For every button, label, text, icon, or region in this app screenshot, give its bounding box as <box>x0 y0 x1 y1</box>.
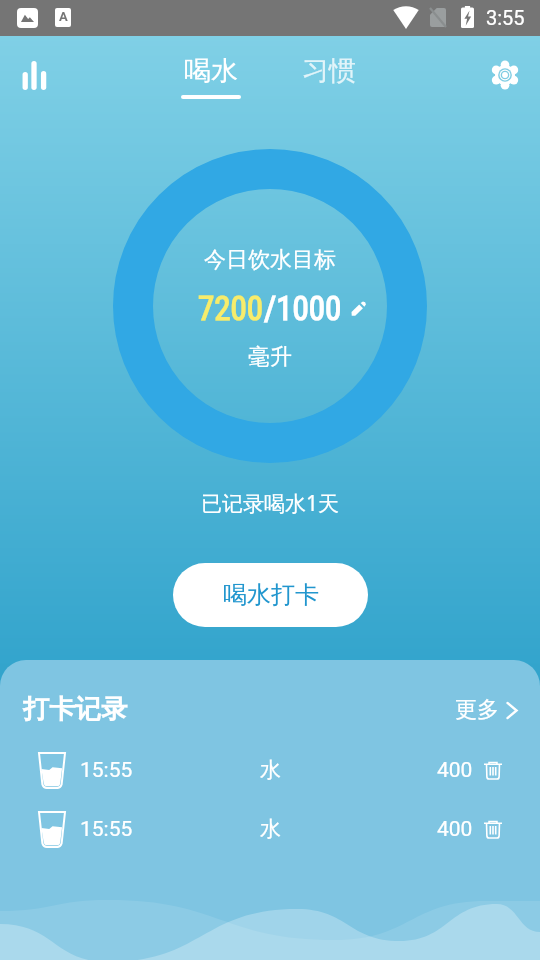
staticText: 习惯 <box>302 54 356 88</box>
button[interactable]: 习惯 <box>293 54 364 88</box>
staticText: 喝水打卡 <box>223 580 319 610</box>
button[interactable]: Settings <box>481 51 529 99</box>
staticText: 400 <box>437 817 473 842</box>
staticText: 3:55 <box>486 6 525 29</box>
staticText: A <box>59 9 68 24</box>
staticText: 400 <box>437 758 473 783</box>
staticText: 已记录喝水1天 <box>0 489 540 518</box>
button[interactable]: 喝水打卡 <box>173 563 368 627</box>
staticText: 水 <box>260 816 281 842</box>
staticText: 毫升 <box>248 343 292 371</box>
staticText: 喝水 <box>184 54 238 88</box>
staticText: /1000 <box>264 289 342 328</box>
button[interactable]: Delete <box>479 815 507 843</box>
staticText: 15:55 <box>80 817 133 842</box>
staticText: 7200 <box>198 289 264 328</box>
button[interactable]: 15:55 <box>0 809 540 849</box>
button[interactable]: Statistics <box>10 37 60 87</box>
staticText: 15:55 <box>80 758 133 783</box>
staticText: 打卡记录 <box>23 693 127 726</box>
staticText: 更多 <box>455 696 499 724</box>
staticText: 水 <box>260 757 281 783</box>
button[interactable]: 更多 <box>455 696 518 724</box>
button[interactable]: 喝水 <box>175 54 246 99</box>
button[interactable]: Delete <box>479 756 507 784</box>
button[interactable]: 15:55 <box>0 750 540 790</box>
staticText: 今日饮水目标 <box>204 246 336 274</box>
